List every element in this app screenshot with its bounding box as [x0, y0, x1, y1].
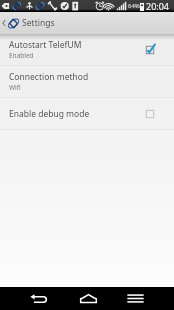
- staticText: Settings: [22, 17, 55, 29]
- button[interactable]: Home: [64, 287, 112, 310]
- staticText: 64%: [128, 2, 140, 10]
- button[interactable]: Back: [14, 287, 62, 310]
- button[interactable]: Autostart TelefUM: [0, 34, 174, 65]
- staticText: Autostart TelefUM: [9, 39, 82, 51]
- button[interactable]: Recent apps: [111, 287, 159, 310]
- staticText: Enable debug mode: [9, 108, 90, 120]
- staticText: Wifi: [9, 83, 21, 92]
- staticText: Connection method: [9, 71, 89, 83]
- button[interactable]: Unchecked: [140, 104, 160, 124]
- button[interactable]: Enable debug mode: [0, 98, 174, 129]
- staticText: Enabled: [9, 51, 34, 60]
- button[interactable]: Connection method: [0, 66, 174, 97]
- button[interactable]: Checked: [140, 40, 160, 60]
- button[interactable]: Navigate up: [0, 12, 174, 34]
- staticText: 20:04: [146, 0, 170, 12]
